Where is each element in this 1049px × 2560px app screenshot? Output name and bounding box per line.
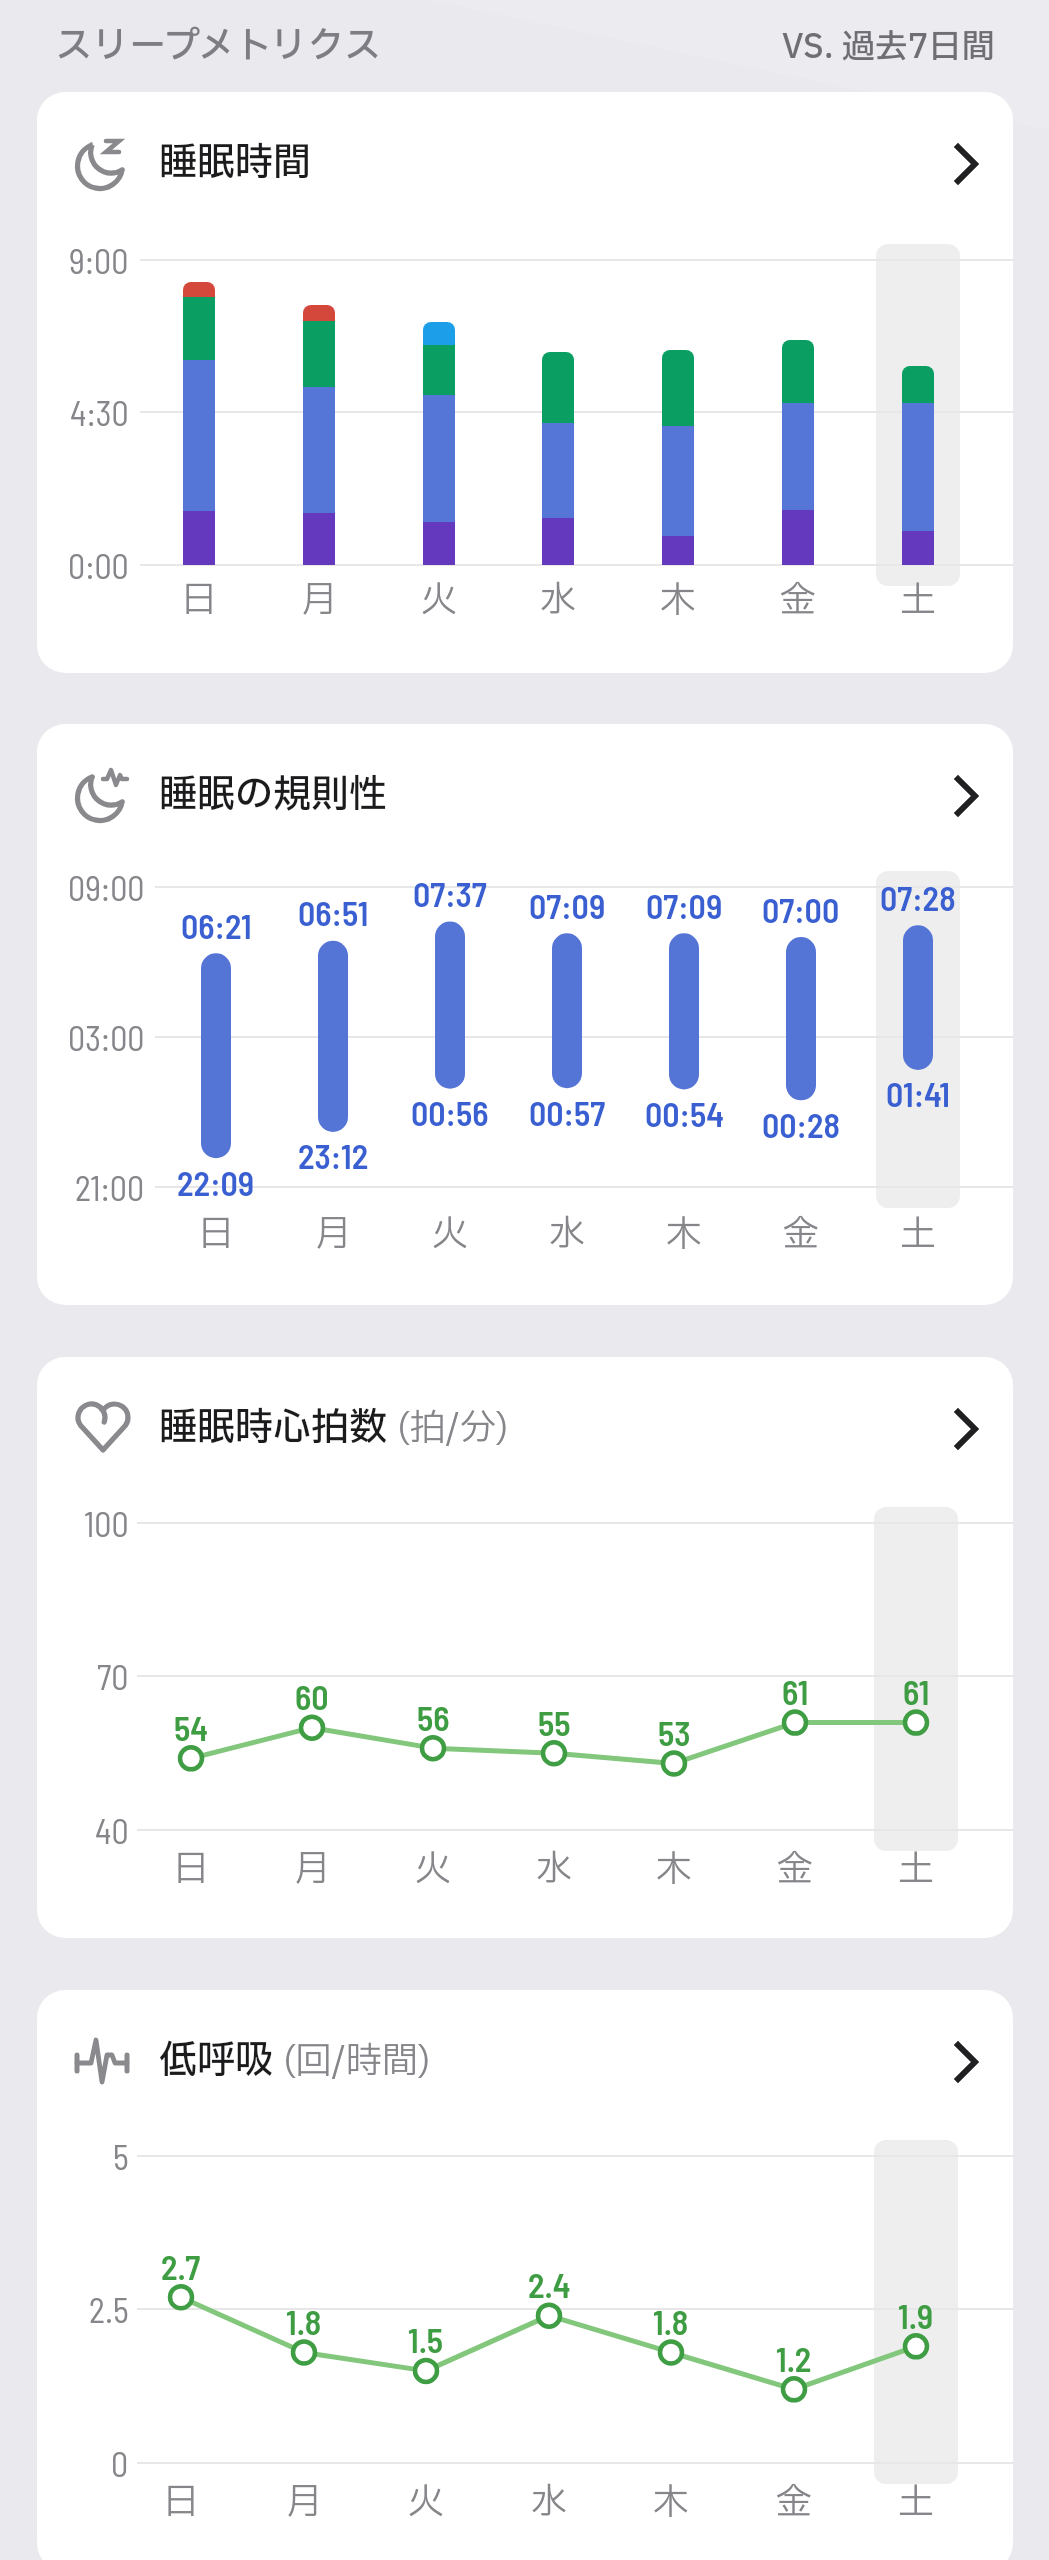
staticText: 00:56	[411, 1092, 489, 1133]
staticText: 06:21	[181, 905, 252, 946]
staticText: 2.5	[89, 2289, 129, 2330]
staticText: 2.4	[528, 2264, 571, 2305]
staticText: 70	[97, 1656, 129, 1697]
staticText: 5	[113, 2136, 129, 2177]
button[interactable]: 低呼吸	[37, 1990, 1013, 2560]
staticText: 61	[903, 1671, 930, 1712]
staticText: 07:00	[762, 889, 840, 930]
staticText: 日	[181, 574, 218, 628]
staticText: 金	[780, 574, 817, 628]
staticText: 木	[656, 1843, 693, 1897]
staticText: 60	[295, 1676, 329, 1717]
staticText: 07:09	[646, 885, 723, 926]
staticText: 00:28	[762, 1104, 840, 1145]
staticText: 0:00	[68, 545, 129, 586]
staticText: 53	[658, 1712, 691, 1753]
staticText: 55	[538, 1702, 571, 1743]
staticText: 月	[315, 1208, 352, 1262]
staticText: 06:51	[298, 892, 369, 933]
staticText: 2.7	[161, 2246, 201, 2287]
staticText: 月	[286, 2476, 323, 2530]
staticText: 月	[294, 1843, 331, 1897]
staticText: 07:37	[413, 873, 487, 914]
staticText: VS. 過去7日間	[782, 23, 995, 72]
staticText: 22:09	[177, 1162, 255, 1203]
staticText: 1.8	[286, 2301, 322, 2342]
staticText: 水	[549, 1208, 586, 1262]
staticText: 火	[408, 2476, 445, 2530]
staticText: 木	[660, 574, 697, 628]
staticText: スリープメトリクス	[55, 19, 381, 74]
staticText: 土	[900, 1208, 937, 1262]
staticText: 100	[84, 1503, 129, 1544]
button[interactable]: 睡眠時間	[37, 92, 1013, 673]
staticText: 金	[776, 2476, 813, 2530]
staticText: 木	[666, 1208, 703, 1262]
staticText: 54	[174, 1707, 208, 1748]
staticText: 月	[301, 574, 338, 628]
staticText: 1.9	[898, 2295, 934, 2336]
staticText: 日	[163, 2476, 200, 2530]
staticText: 1.2	[776, 2338, 812, 2379]
staticText: (回/時間)	[274, 2035, 431, 2089]
staticText: 木	[653, 2476, 690, 2530]
staticText: 9:00	[69, 240, 129, 281]
staticText: 21:00	[75, 1167, 145, 1208]
staticText: 00:57	[529, 1092, 606, 1133]
staticText: (拍/分)	[388, 1402, 509, 1456]
staticText: 水	[531, 2476, 568, 2530]
staticText: 火	[415, 1843, 452, 1897]
staticText: 01:41	[886, 1073, 950, 1114]
staticText: 03:00	[68, 1017, 145, 1058]
staticText: 1.8	[653, 2301, 689, 2342]
staticText: 日	[198, 1208, 235, 1262]
staticText: 火	[421, 574, 458, 628]
staticText: 土	[898, 1843, 935, 1897]
staticText: 日	[173, 1843, 210, 1897]
staticText: 56	[417, 1697, 450, 1738]
staticText: 1.5	[408, 2319, 444, 2360]
staticText: 4:30	[70, 392, 129, 433]
staticText: 水	[540, 574, 577, 628]
staticText: 土	[900, 574, 937, 628]
staticText: 0	[111, 2443, 129, 2484]
staticText: 07:09	[529, 885, 606, 926]
staticText: 土	[898, 2476, 935, 2530]
staticText: 金	[783, 1208, 820, 1262]
staticText: 火	[432, 1208, 469, 1262]
staticText: 低呼吸	[159, 2033, 274, 2090]
button[interactable]: 睡眠時心拍数	[37, 1357, 1013, 1938]
staticText: 23:12	[298, 1135, 369, 1176]
staticText: 睡眠の規則性	[159, 767, 388, 824]
staticText: 07:28	[880, 877, 956, 918]
staticText: 61	[782, 1671, 809, 1712]
staticText: 睡眠時間	[159, 135, 312, 192]
staticText: 40	[95, 1810, 129, 1851]
staticText: 金	[777, 1843, 814, 1897]
button[interactable]: 睡眠の規則性	[37, 724, 1013, 1305]
staticText: 水	[536, 1843, 573, 1897]
staticText: 00:54	[645, 1093, 724, 1134]
staticText: 09:00	[68, 867, 145, 908]
staticText: 睡眠時心拍数	[159, 1400, 388, 1457]
